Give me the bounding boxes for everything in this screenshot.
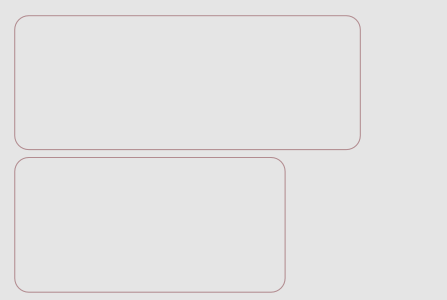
button[interactable]: Primary card: [15, 16, 360, 150]
button[interactable]: Secondary card: [15, 157, 285, 292]
